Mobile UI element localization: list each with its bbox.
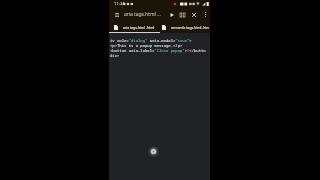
- staticText: 11:24: [114, 1, 125, 7]
- button[interactable]: More options: [201, 10, 210, 19]
- button[interactable]: Split view: [178, 10, 187, 19]
- staticText: aria tags.html ...: [124, 11, 161, 18]
- button[interactable]: Run: [167, 10, 176, 19]
- staticText: <button aria-label="Close popup">X</butt…: [110, 48, 206, 53]
- button[interactable]: Cursor control: [146, 144, 161, 159]
- staticText: aria tags.html .html: [123, 25, 155, 30]
- staticText: semantic tags.html .html: [171, 25, 209, 30]
- button[interactable]: Navigation menu: [112, 10, 122, 20]
- staticText: <p>This is a popup message.</p>: [110, 43, 183, 48]
- button[interactable]: semantic tags.html .html: [160, 21, 210, 33]
- button[interactable]: aria tags.html .html: [109, 21, 160, 33]
- button[interactable]: Close: [189, 10, 198, 19]
- staticText: iv role="dialog" aria-modal="true">: [110, 38, 192, 43]
- staticText: div>: [110, 53, 120, 58]
